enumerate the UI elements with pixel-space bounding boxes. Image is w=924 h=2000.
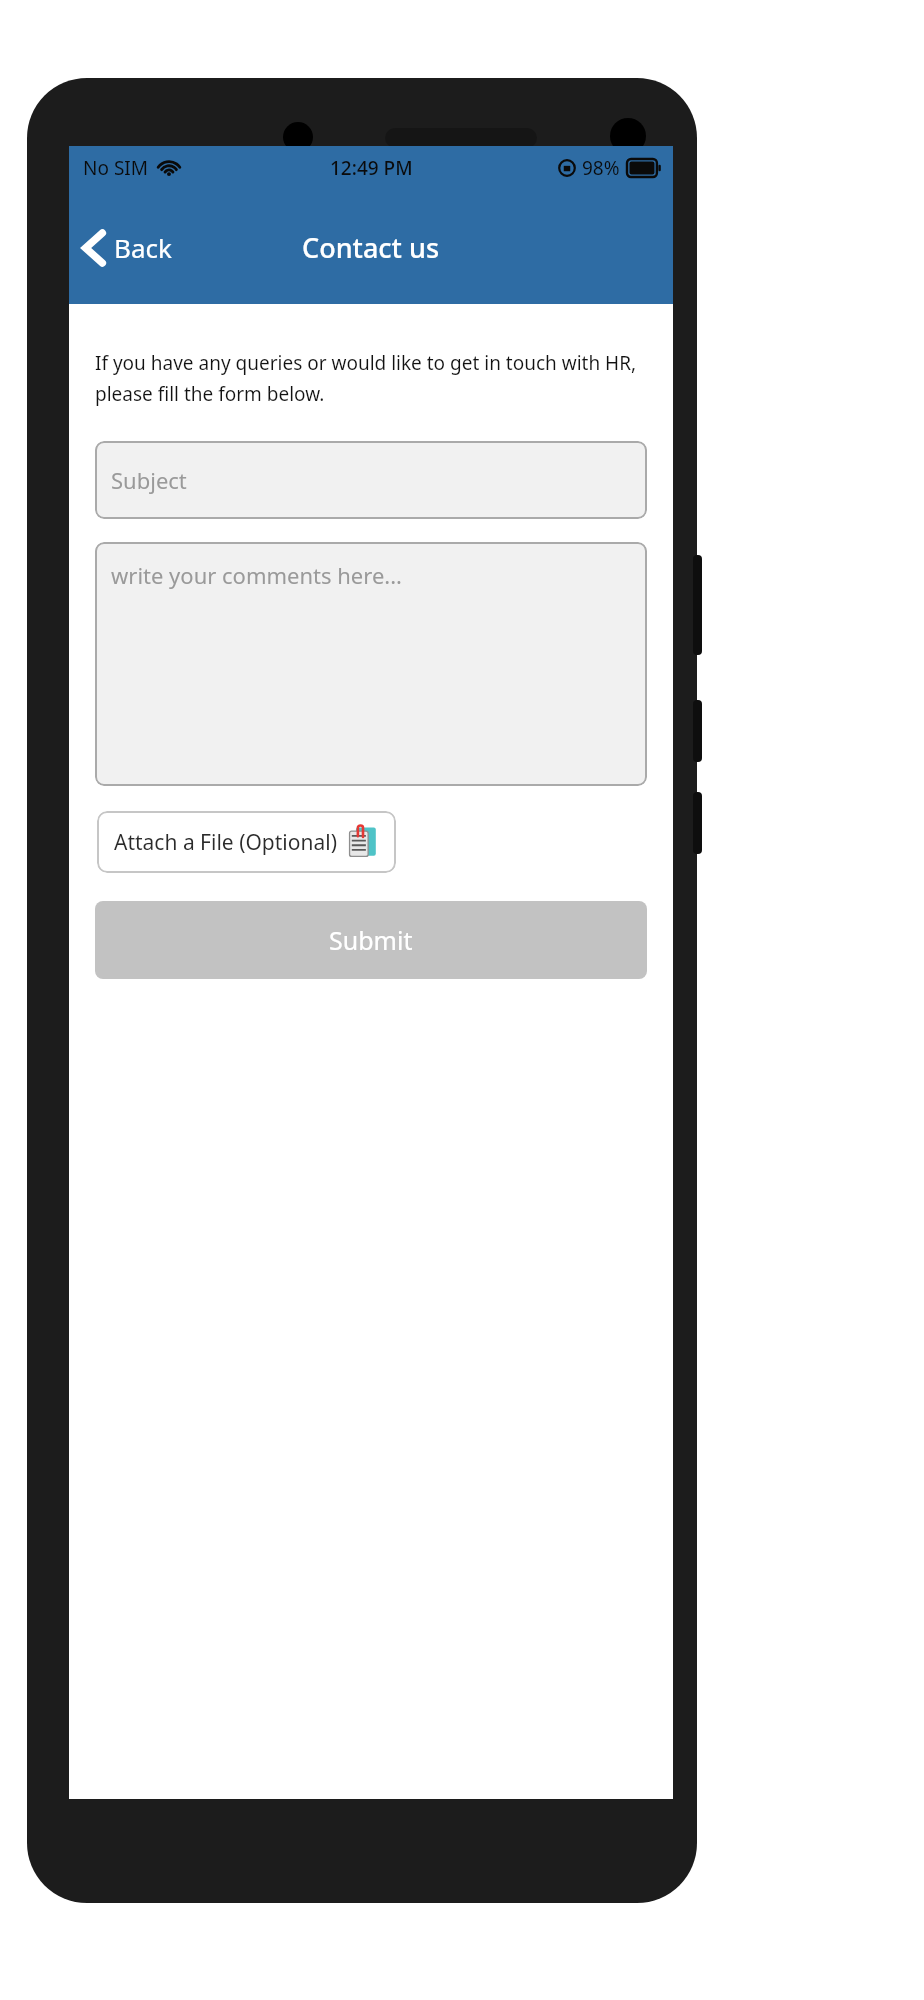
staticText: Back [114,230,172,265]
button[interactable]: write your comments here... [95,542,647,786]
staticText: Attach a File (Optional) [114,828,337,857]
staticText: Submit [329,923,413,957]
staticText: 98% [582,155,620,181]
button[interactable]: Subject [95,441,647,519]
staticText: No SIM [83,155,148,181]
staticText: 12:49 PM [330,155,413,181]
other: Attach a file [347,824,379,860]
staticText: If you have any queries or would like to… [95,350,647,406]
button[interactable]: Submit [95,901,647,979]
button[interactable]: Attach a File (Optional) [97,811,396,873]
staticText: Contact us [302,229,440,266]
button[interactable]: Back [69,222,186,273]
staticText: Subject [111,465,187,495]
staticText: write your comments here... [111,560,403,590]
